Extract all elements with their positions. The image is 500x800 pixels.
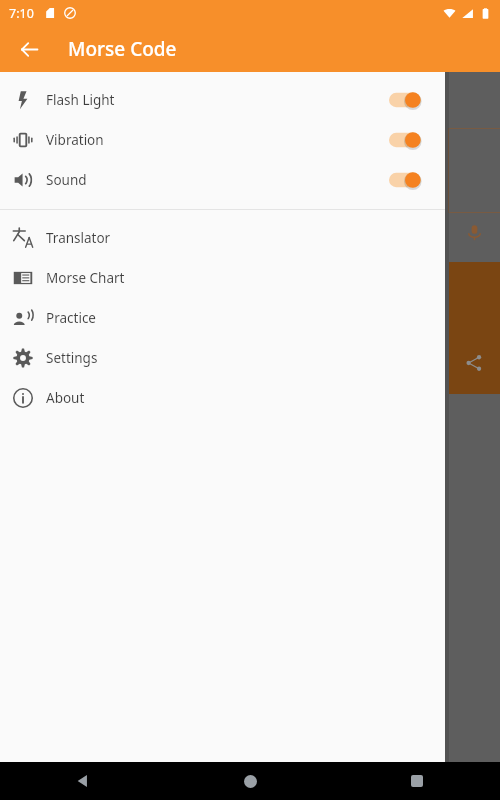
staticText: Morse Chart	[46, 269, 125, 287]
staticText: Flash Light	[46, 91, 387, 109]
button[interactable]: Vibration	[0, 120, 445, 160]
staticText: 7:10	[9, 5, 34, 22]
button[interactable]: About	[0, 378, 445, 418]
staticText: About	[46, 389, 85, 407]
staticText: Morse Code	[68, 36, 177, 62]
button[interactable]: Sound	[0, 160, 445, 200]
staticText: Sound	[46, 171, 387, 189]
staticText: Vibration	[46, 131, 387, 149]
button[interactable]: Recent apps	[398, 762, 436, 800]
button[interactable]: Morse Chart	[0, 258, 445, 298]
button[interactable]: Home	[231, 762, 269, 800]
button[interactable]: Flash Light	[0, 80, 445, 120]
staticText: Settings	[46, 349, 98, 367]
button[interactable]: Back	[64, 762, 102, 800]
button[interactable]: Practice	[0, 298, 445, 338]
staticText: Practice	[46, 309, 96, 327]
button[interactable]: Back	[12, 32, 46, 66]
button[interactable]: Translator	[0, 218, 445, 258]
button[interactable]: Settings	[0, 338, 445, 378]
staticText: Translator	[46, 229, 111, 247]
